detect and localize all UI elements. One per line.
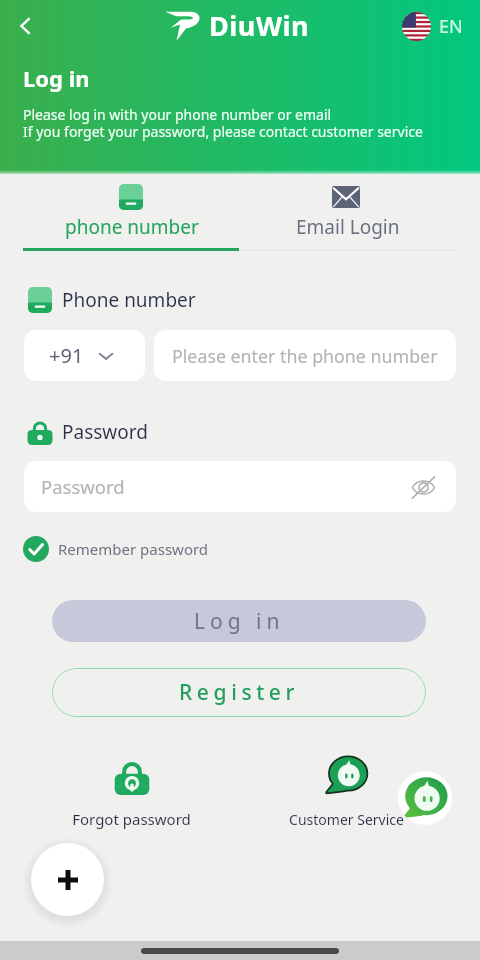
button[interactable]: Email Login <box>240 178 456 252</box>
button[interactable]: phone number <box>24 178 239 252</box>
button[interactable]: Please enter the phone number <box>154 330 456 381</box>
button[interactable]: Forgot password <box>51 748 211 836</box>
button[interactable]: Show password <box>408 472 438 502</box>
staticText: Password <box>41 474 125 499</box>
button[interactable]: Add <box>31 843 104 916</box>
button[interactable]: +91 <box>24 330 145 381</box>
button[interactable]: Remember password <box>23 535 209 563</box>
button[interactable]: Password <box>24 461 456 512</box>
staticText: Forgot password <box>72 809 191 829</box>
staticText: Email Login <box>296 214 400 240</box>
staticText: Log in <box>23 63 90 93</box>
staticText: Password <box>62 419 148 445</box>
staticText: Log in <box>194 607 285 636</box>
button[interactable]: Customer service chat <box>398 771 452 825</box>
staticText: Please log in with your phone number or … <box>23 105 332 124</box>
button[interactable]: Back <box>8 9 42 43</box>
staticText: If you forget your password, please cont… <box>23 122 423 141</box>
staticText: Phone number <box>62 287 196 313</box>
staticText: Remember password <box>58 539 209 559</box>
staticText: Register <box>179 678 300 707</box>
staticText: Please enter the phone number <box>172 344 438 368</box>
staticText: Customer Service <box>289 810 404 829</box>
button[interactable]: Customer Service <box>266 748 426 836</box>
button[interactable]: Log in <box>52 600 426 642</box>
staticText: +91 <box>49 342 84 369</box>
staticText: EN <box>439 14 463 39</box>
staticText: phone number <box>65 214 199 240</box>
button[interactable]: Register <box>52 668 426 717</box>
staticText: DiuWin <box>209 7 310 44</box>
button[interactable]: EN <box>402 11 463 41</box>
